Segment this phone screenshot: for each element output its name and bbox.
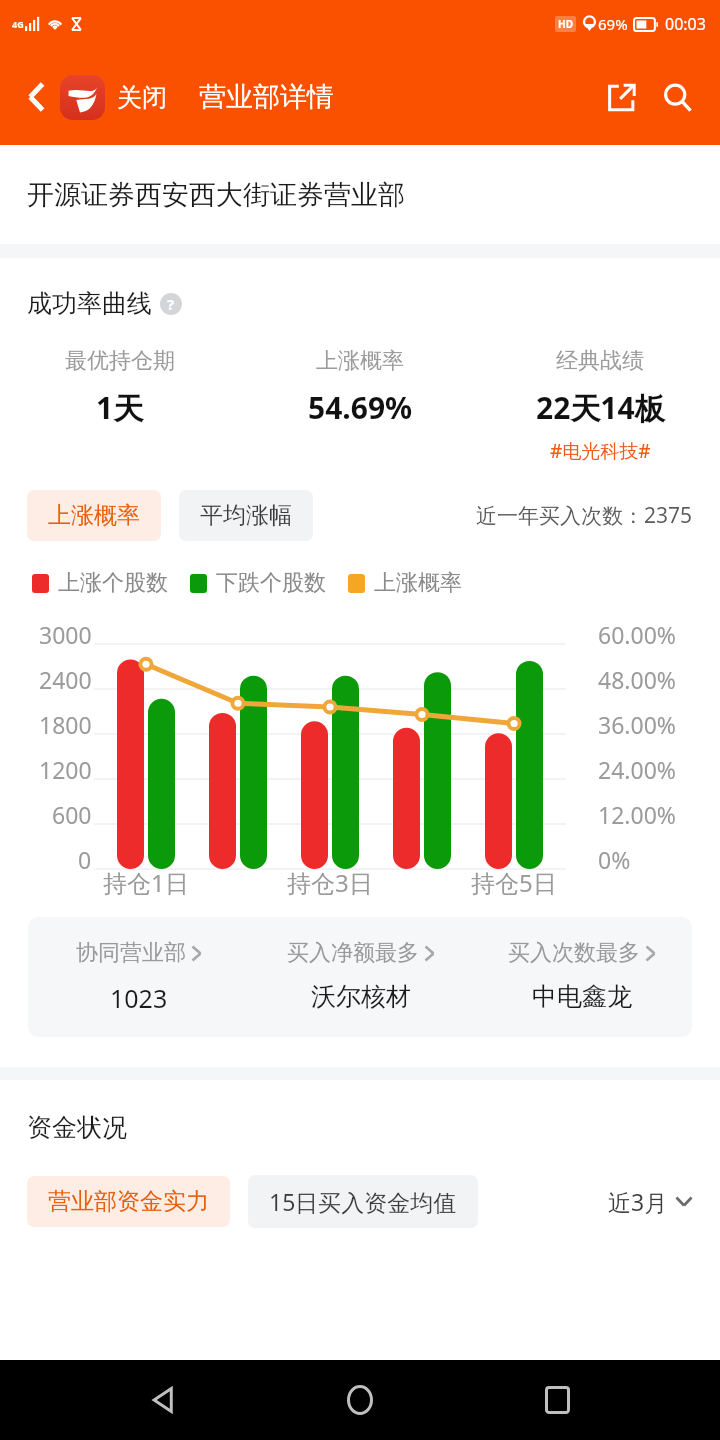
staticText: 15日买入资金均值 [269,1186,457,1217]
staticText: 成功率曲线 [27,288,152,319]
staticText: 0 [78,844,92,875]
staticText: 持仓5日 [471,866,557,899]
staticText: 36.00% [598,709,676,740]
button[interactable]: Back [131,1367,197,1433]
staticText: 最优持仓期 [65,347,175,375]
button[interactable]: Help [160,293,182,315]
staticText: 中电鑫龙 [532,981,632,1012]
staticText: 买入净额最多 [287,939,419,967]
staticText: 持仓3日 [287,866,373,899]
button[interactable]: Recent apps [524,1367,590,1433]
staticText: 协同营业部 [76,939,186,967]
staticText: 沃尔核材 [311,981,411,1012]
staticText: 3000 [39,619,92,650]
button[interactable]: Home [327,1367,393,1433]
button[interactable]: Search [652,72,702,122]
staticText: 开源证券西安西大街证券营业部 [27,178,405,212]
staticText: 600 [52,799,92,830]
button[interactable]: 15日买入资金均值 [248,1175,478,1228]
staticText: 近3月 [608,1186,668,1217]
staticText: 关闭 [117,82,167,113]
staticText: 2400 [39,664,92,695]
staticText: 1800 [39,709,92,740]
staticText: 00:03 [665,13,706,35]
button[interactable]: 买入次数最多 [471,939,692,1012]
staticText: 上涨概率 [374,569,462,597]
staticText: 1天 [96,387,144,428]
staticText: 上涨概率 [48,501,140,530]
button[interactable]: 协同营业部 [28,939,250,1015]
staticText: 48.00% [598,664,676,695]
staticText: 54.69% [308,387,413,428]
staticText: 下跌个股数 [216,569,326,597]
staticText: 营业部详情 [199,80,334,114]
button[interactable]: #电光科技# [550,438,651,464]
staticText: 24.00% [598,754,676,785]
button[interactable]: 近3月 [608,1186,693,1217]
staticText: 营业部资金实力 [48,1187,209,1216]
staticText: 上涨概率 [316,347,404,375]
staticText: 持仓1日 [103,866,189,899]
staticText: 上涨个股数 [58,569,168,597]
staticText: 1200 [39,754,92,785]
staticText: 60.00% [598,619,676,650]
button[interactable]: Share [596,72,646,122]
staticText: 0% [598,844,631,875]
button[interactable]: App logo [60,75,105,120]
staticText: 1023 [110,981,168,1015]
button[interactable]: 关闭 [117,82,167,113]
staticText: 69% [598,14,628,34]
staticText: 资金状况 [27,1112,127,1143]
staticText: HD [558,17,573,31]
staticText: 12.00% [598,799,676,830]
staticText: 平均涨幅 [200,501,292,530]
button[interactable]: 上涨概率 [27,490,161,541]
staticText: 4G [12,18,24,30]
staticText: 买入次数最多 [508,939,640,967]
button[interactable]: Back [14,74,60,120]
staticText: 近一年买入次数：2375 [476,501,693,530]
button[interactable]: 买入净额最多 [250,939,471,1012]
staticText: 22天14板 [536,387,665,428]
staticText: ? [167,294,175,314]
button[interactable]: 营业部资金实力 [27,1176,230,1227]
staticText: 经典战绩 [556,347,644,375]
staticText: #电光科技# [550,438,651,464]
button[interactable]: 平均涨幅 [179,490,313,541]
